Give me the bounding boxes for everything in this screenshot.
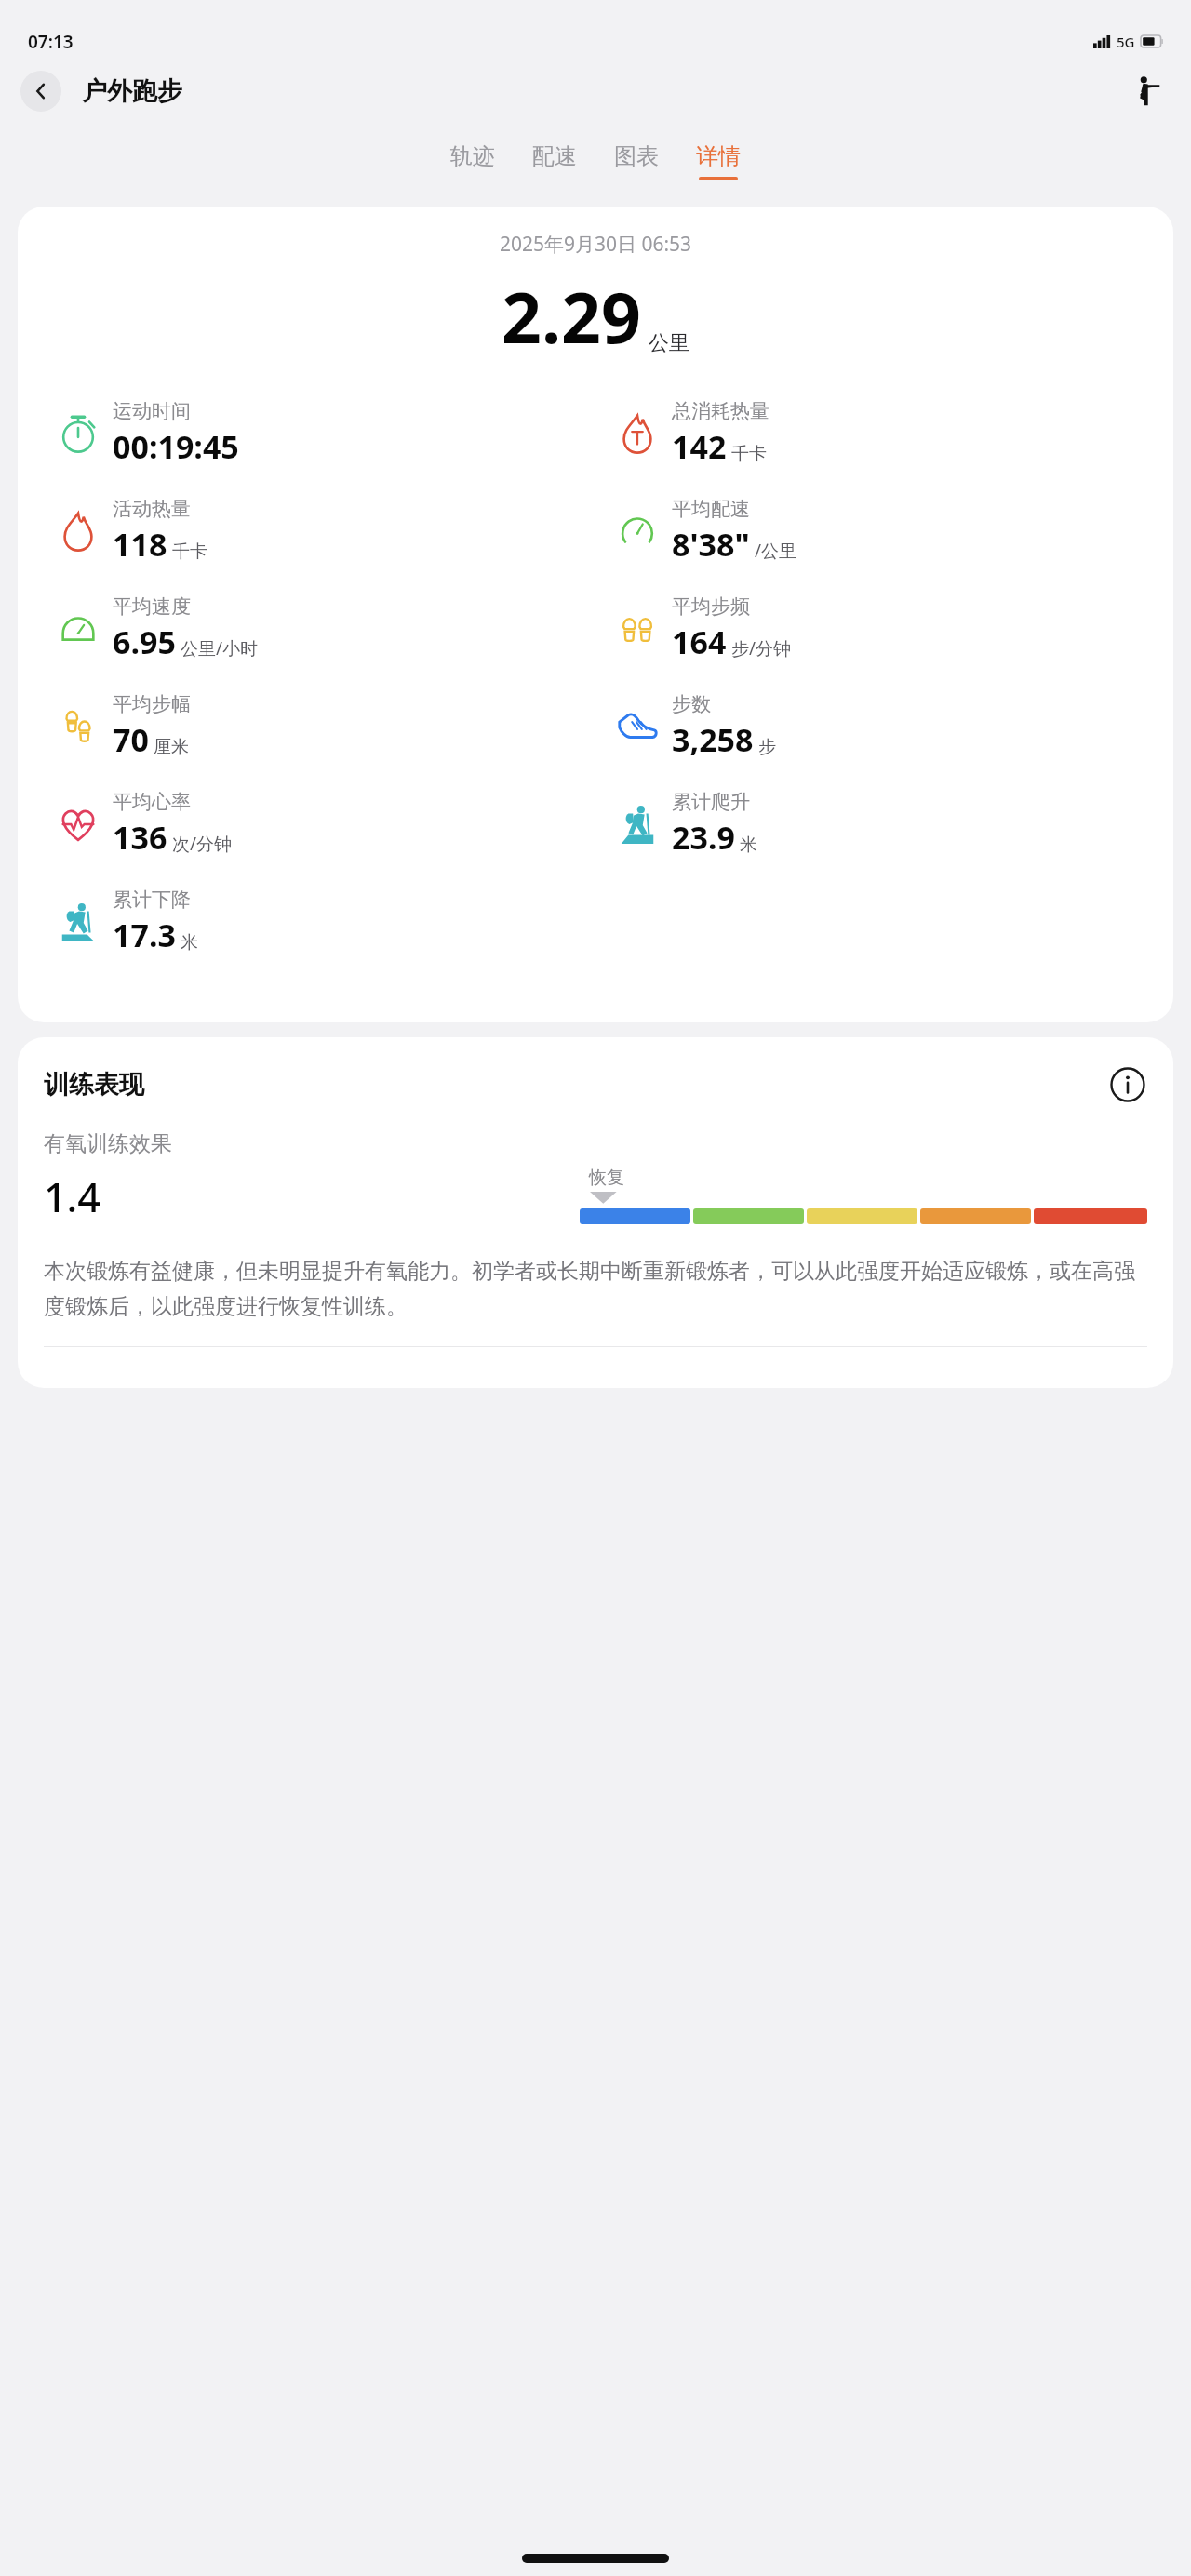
button[interactable]: 平均步幅	[53, 692, 595, 761]
staticText: 步数	[672, 692, 711, 716]
staticText: 恢复	[589, 1167, 624, 1189]
staticText: 有氧训练效果	[44, 1130, 172, 1157]
button[interactable]: 步数	[612, 692, 1173, 761]
staticText: 千卡	[172, 541, 207, 563]
staticText: 平均配速	[672, 497, 750, 521]
staticText: 公里	[649, 330, 689, 356]
button[interactable]: 平均速度	[53, 594, 595, 663]
button[interactable]: 累计下降	[53, 888, 595, 956]
staticText: 训练表现	[44, 1069, 144, 1101]
staticText: 图表	[614, 142, 659, 170]
staticText: 2025年9月30日 06:53	[18, 231, 1173, 258]
staticText: 3,258	[672, 718, 754, 761]
staticText: 步/分钟	[731, 636, 792, 661]
staticText: 平均速度	[113, 594, 191, 619]
staticText: 总消耗热量	[672, 399, 769, 423]
staticText: 详情	[696, 142, 741, 170]
button[interactable]: 累计爬升	[612, 790, 1173, 859]
staticText: 136	[113, 816, 167, 859]
staticText: 公里/小时	[181, 636, 259, 661]
staticText: 17.3	[113, 914, 176, 956]
staticText: 运动时间	[113, 399, 191, 423]
staticText: 户外跑步	[82, 75, 182, 107]
staticText: 累计爬升	[672, 790, 750, 814]
staticText: 00:19:45	[113, 425, 239, 468]
staticText: 次/分钟	[172, 832, 233, 856]
button[interactable]: Activity type	[1124, 69, 1169, 113]
button[interactable]: 平均步频	[612, 594, 1173, 663]
staticText: 米	[740, 834, 757, 856]
staticText: 164	[672, 621, 727, 663]
button[interactable]: 平均配速	[612, 497, 1173, 566]
button[interactable]: 详情	[696, 142, 741, 180]
staticText: 1.4	[44, 1169, 100, 1224]
staticText: 平均心率	[113, 790, 191, 814]
button[interactable]: Info	[1108, 1065, 1147, 1104]
staticText: 累计下降	[113, 888, 191, 912]
staticText: 千卡	[731, 443, 767, 465]
staticText: 本次锻炼有益健康，但未明显提升有氧能力。初学者或长期中断重新锻炼者，可以从此强度…	[44, 1258, 1147, 1320]
staticText: 8'38"	[672, 523, 750, 566]
button[interactable]: Back	[20, 71, 61, 112]
button[interactable]: 运动时间	[53, 399, 595, 468]
staticText: 平均步幅	[113, 692, 191, 716]
button[interactable]: 活动热量	[53, 497, 595, 566]
staticText: 米	[181, 931, 198, 954]
staticText: 平均步频	[672, 594, 750, 619]
staticText: 配速	[532, 142, 577, 170]
staticText: 活动热量	[113, 497, 191, 521]
staticText: 厘米	[154, 736, 189, 758]
button[interactable]: 轨迹	[450, 142, 495, 180]
button[interactable]: 平均心率	[53, 790, 595, 859]
button[interactable]: 图表	[614, 142, 659, 180]
staticText: 5G	[1117, 33, 1135, 51]
staticText: 轨迹	[450, 142, 495, 170]
staticText: 142	[672, 425, 727, 468]
staticText: 23.9	[672, 816, 735, 859]
staticText: 6.95	[113, 621, 176, 663]
button[interactable]: 总消耗热量	[612, 399, 1173, 468]
staticText: 2.29	[502, 269, 641, 364]
button[interactable]: 配速	[532, 142, 577, 180]
staticText: 118	[113, 523, 167, 566]
staticText: 步	[758, 736, 776, 758]
staticText: /公里	[755, 539, 797, 563]
staticText: 07:13	[28, 30, 74, 54]
staticText: 70	[113, 718, 149, 761]
